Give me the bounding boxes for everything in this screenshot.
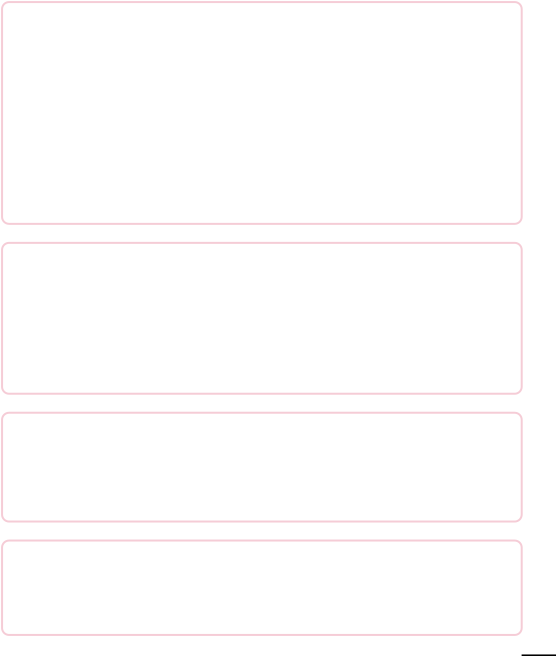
button[interactable]: Card 3: [2, 413, 522, 522]
button[interactable]: Card 2: [2, 243, 522, 394]
button[interactable]: Card 1: [2, 2, 522, 224]
button[interactable]: Card 4: [2, 540, 522, 635]
